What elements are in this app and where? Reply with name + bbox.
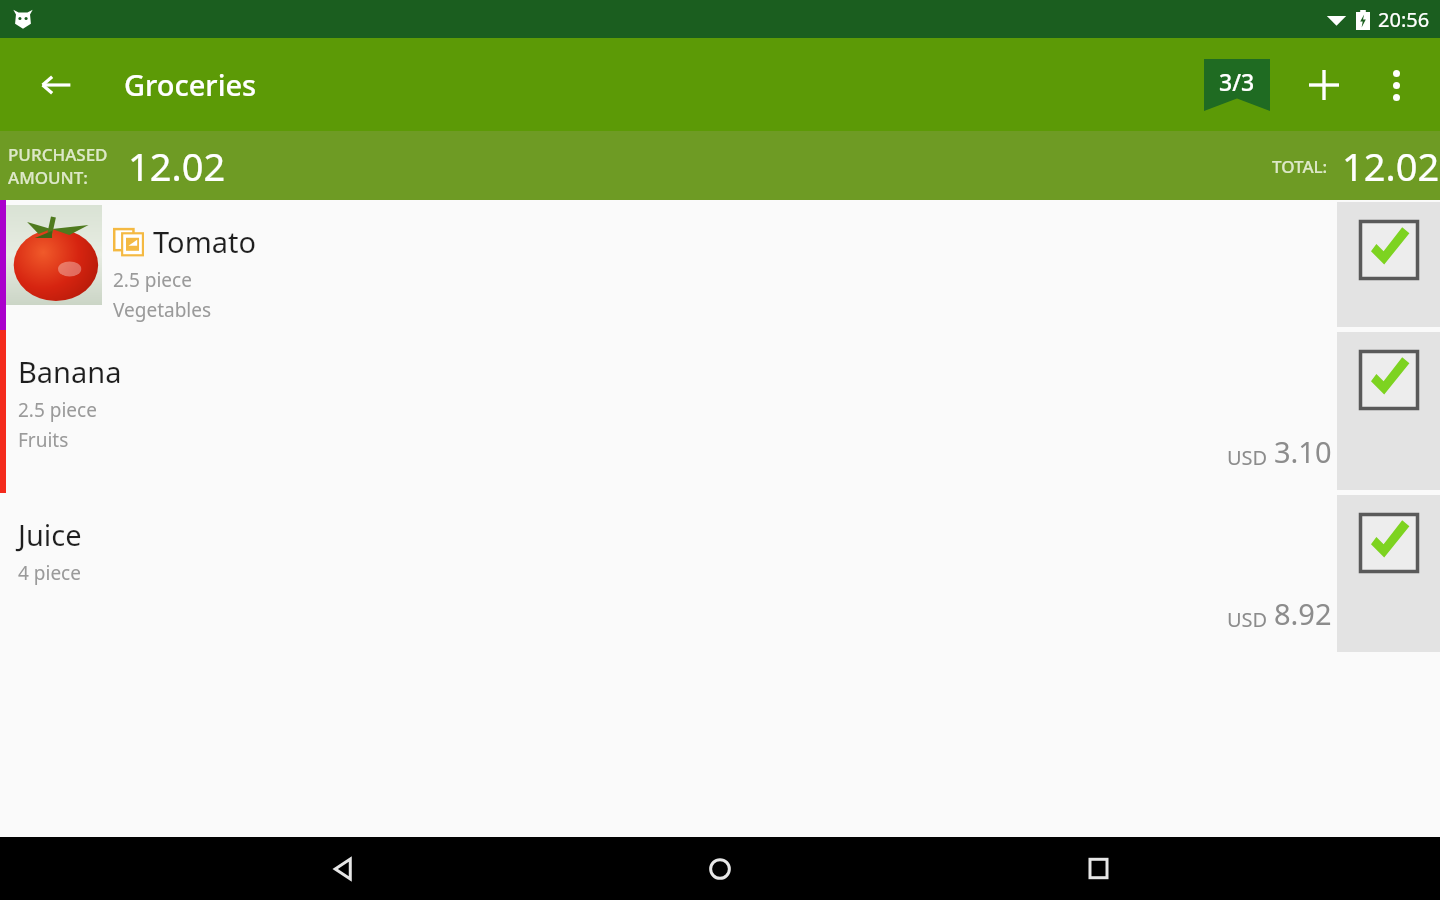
staticText: Vegetables xyxy=(113,297,212,323)
staticText: AMOUNT: xyxy=(8,166,88,189)
staticText: USD xyxy=(1227,444,1268,471)
staticText: 3/3 xyxy=(1219,66,1255,97)
staticText: 2.5 piece xyxy=(113,267,192,293)
button[interactable]: Juice xyxy=(0,493,1440,655)
staticText: 8.92 xyxy=(1274,594,1332,633)
button[interactable]: Purchased toggle for Tomato xyxy=(1337,202,1440,327)
button[interactable]: Purchased toggle for Banana xyxy=(1337,332,1440,490)
staticText: 12.02 xyxy=(128,140,226,192)
button[interactable]: Home xyxy=(685,837,755,900)
button[interactable]: More options xyxy=(1370,59,1422,111)
staticText: Juice xyxy=(18,515,82,554)
button[interactable]: Add item xyxy=(1296,57,1352,113)
button[interactable]: Back xyxy=(30,59,82,111)
staticText: Groceries xyxy=(124,65,257,104)
button[interactable]: Back xyxy=(308,837,378,900)
staticText: Tomato xyxy=(153,222,257,261)
staticText: TOTAL: xyxy=(1272,155,1328,178)
button[interactable]: Purchased toggle for Juice xyxy=(1337,495,1440,652)
staticText: 3.10 xyxy=(1274,432,1332,471)
button[interactable]: Banana xyxy=(0,330,1440,493)
staticText: 4 piece xyxy=(18,560,81,586)
staticText: PURCHASED xyxy=(8,143,108,166)
staticText: 2.5 piece xyxy=(18,397,97,423)
button[interactable]: Tomato xyxy=(0,200,1440,330)
button[interactable]: Items purchased 3 of 3 xyxy=(1204,59,1270,111)
button[interactable]: Recent apps xyxy=(1063,837,1133,900)
staticText: Fruits xyxy=(18,427,69,453)
staticText: USD xyxy=(1227,606,1268,633)
staticText: 12.02 xyxy=(1342,140,1440,192)
staticText: 20:56 xyxy=(1378,6,1430,33)
staticText: Banana xyxy=(18,352,122,391)
